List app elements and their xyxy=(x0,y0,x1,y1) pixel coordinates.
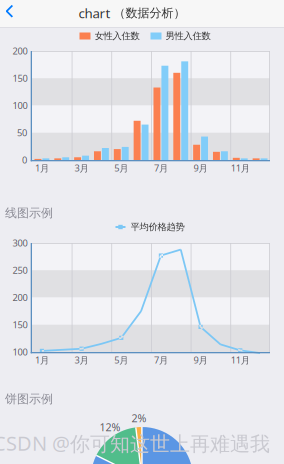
staticText: 200 xyxy=(12,291,27,304)
staticText: （数据分析） xyxy=(113,6,185,20)
button[interactable]: Back xyxy=(5,3,27,24)
staticText: 9月 xyxy=(194,354,208,366)
staticText: CSDN @你可知这世上再难遇我 xyxy=(0,430,270,456)
staticText: 0 xyxy=(22,154,27,166)
staticText: 5月 xyxy=(114,354,128,366)
staticText: 线图示例 xyxy=(5,206,53,220)
staticText: chart xyxy=(78,4,110,22)
staticText: 12% xyxy=(99,420,120,434)
staticText: 女性入住数 xyxy=(94,30,139,42)
staticText: 250 xyxy=(12,264,27,276)
staticText: 5月 xyxy=(114,162,128,174)
staticText: 3月 xyxy=(75,354,89,366)
staticText: 7月 xyxy=(154,354,168,366)
staticText: 100 xyxy=(12,346,27,358)
staticText: 1月 xyxy=(35,354,49,366)
staticText: 9月 xyxy=(194,162,208,174)
staticText: 平均价格趋势 xyxy=(130,221,184,233)
staticText: 50 xyxy=(17,127,27,139)
staticText: 7月 xyxy=(154,162,168,174)
staticText: 3月 xyxy=(75,162,89,174)
staticText: 男性入住数 xyxy=(165,30,210,42)
staticText: 150 xyxy=(12,72,27,84)
staticText: 100 xyxy=(12,99,27,112)
staticText: 11月 xyxy=(231,354,250,366)
staticText: 1月 xyxy=(35,162,49,174)
staticText: 饼图示例 xyxy=(5,392,53,406)
staticText: 200 xyxy=(12,45,27,57)
staticText: 11月 xyxy=(231,162,250,174)
staticText: 300 xyxy=(12,237,27,249)
staticText: 150 xyxy=(12,319,27,331)
staticText: 2% xyxy=(131,411,146,425)
